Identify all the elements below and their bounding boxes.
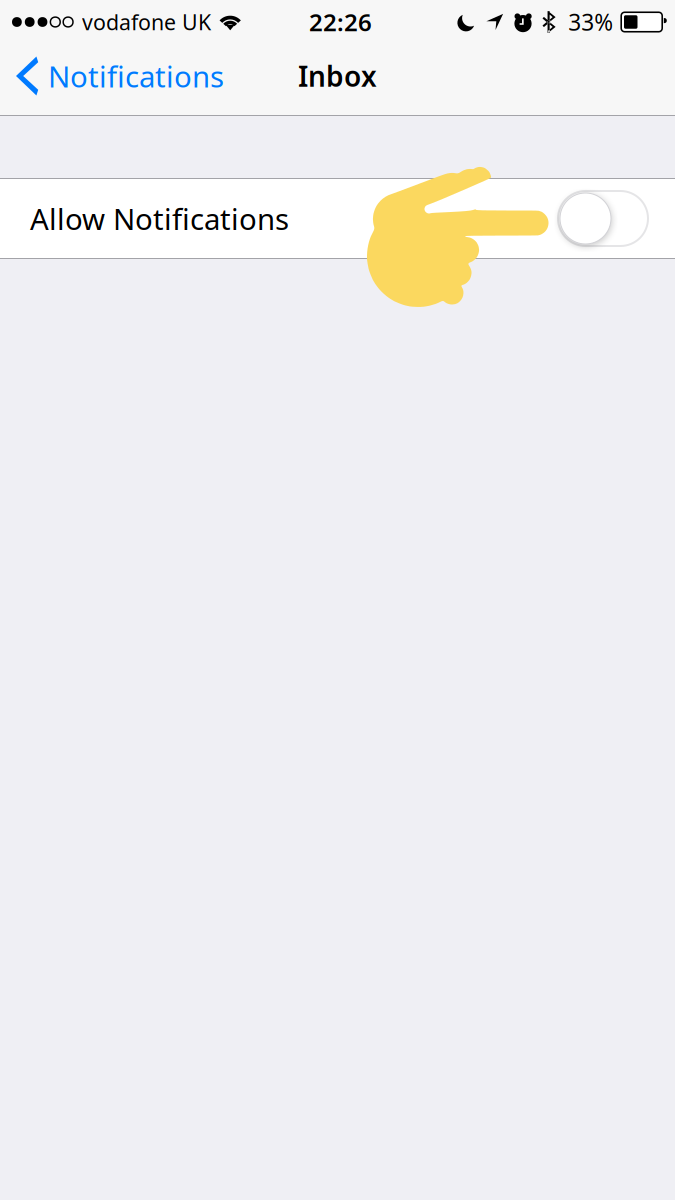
staticText: 22:26 bbox=[309, 6, 372, 38]
staticText: vodafone UK bbox=[82, 8, 211, 36]
staticText: 33% bbox=[568, 7, 613, 37]
button[interactable]: Notifications bbox=[0, 46, 236, 106]
button[interactable]: Allow Notifications bbox=[0, 178, 675, 259]
staticText: Allow Notifications bbox=[30, 199, 289, 238]
staticText: Notifications bbox=[48, 56, 224, 95]
staticText: Inbox bbox=[298, 57, 377, 95]
